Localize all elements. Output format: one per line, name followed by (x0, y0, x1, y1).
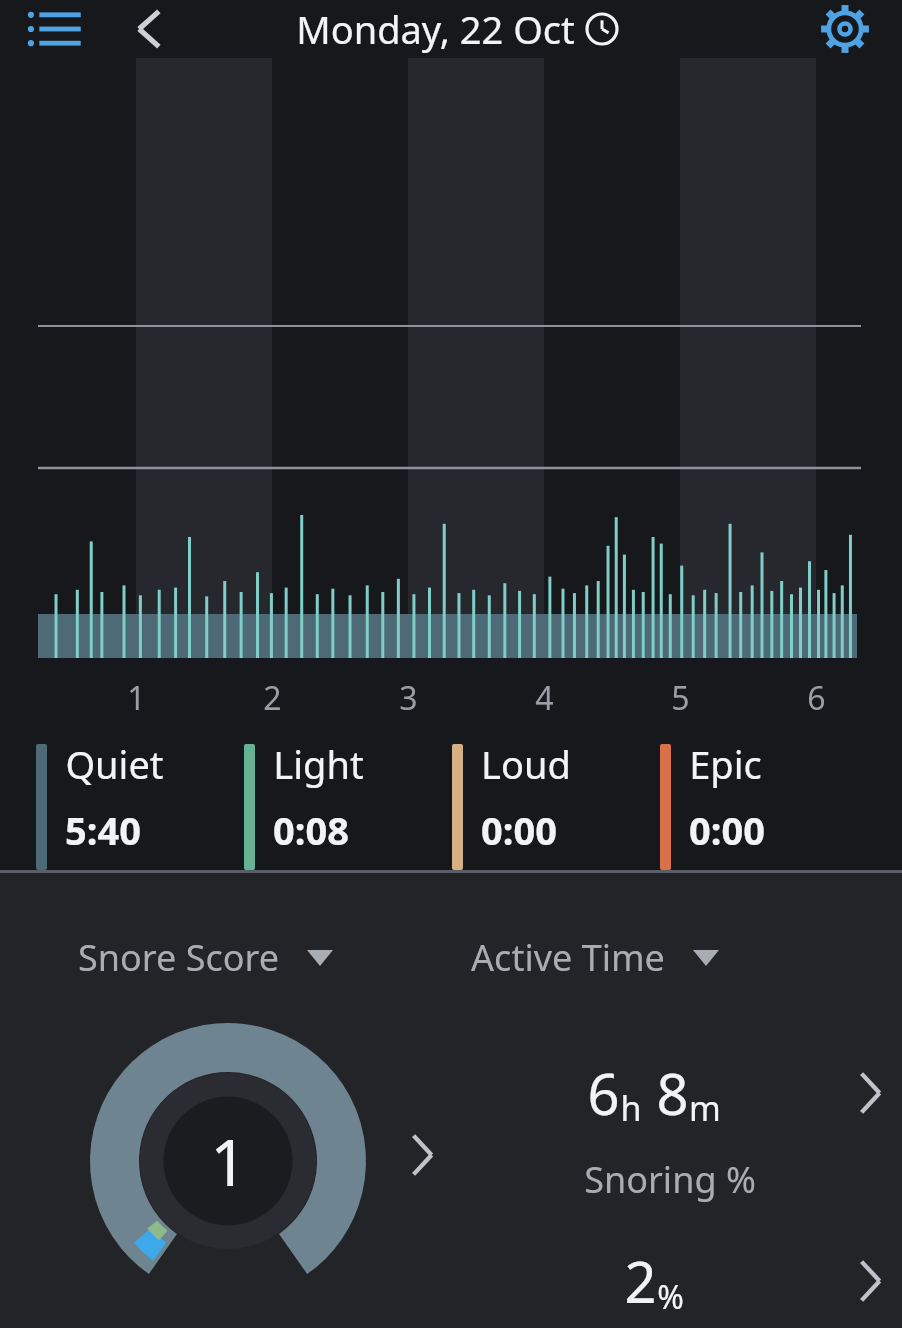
staticText: h (620, 1085, 642, 1131)
staticText: Active Time (471, 933, 665, 982)
staticText: 0:00 (689, 804, 765, 856)
button[interactable]: Snoring % (470, 1155, 870, 1204)
staticText: 1 (127, 676, 146, 720)
button[interactable]: Loud (452, 738, 660, 864)
staticText: Light (273, 738, 364, 790)
staticText: 3 (399, 676, 418, 720)
staticText: Loud (481, 738, 571, 790)
staticText: 2 (624, 1243, 657, 1319)
button[interactable]: Menu (24, 4, 86, 54)
staticText: 6 (587, 1055, 620, 1131)
button[interactable]: Active Time (471, 933, 902, 982)
button[interactable]: Light (244, 738, 452, 864)
staticText: Snoring % (584, 1155, 756, 1204)
staticText: Quiet (65, 738, 164, 790)
button[interactable]: 6 (470, 1045, 902, 1141)
staticText: Epic (689, 738, 762, 790)
button[interactable]: Back (120, 0, 178, 58)
staticText: 8 (656, 1055, 689, 1131)
staticText: 0:08 (273, 804, 349, 856)
button[interactable]: Epic (660, 738, 868, 864)
staticText: m (689, 1085, 721, 1131)
staticText: Snore Score (78, 933, 279, 982)
button[interactable]: Monday, 22 Oct (296, 3, 619, 55)
button[interactable]: Settings (814, 0, 876, 58)
button[interactable]: Snore score details (392, 1125, 452, 1185)
button[interactable]: Quiet (36, 738, 244, 864)
staticText: Monday, 22 Oct (296, 3, 575, 55)
staticText: 6 (807, 676, 826, 720)
staticText: 5 (671, 676, 690, 720)
staticText: 4 (535, 676, 554, 720)
button[interactable]: 2 (470, 1233, 902, 1328)
staticText: % (657, 1275, 684, 1319)
button[interactable]: Snore Score (78, 933, 451, 982)
staticText: 1 (210, 1118, 247, 1205)
button[interactable]: 1 (88, 1021, 368, 1301)
staticText: 2 (263, 676, 282, 720)
staticText: 5:40 (65, 804, 141, 856)
staticText: 0:00 (481, 804, 557, 856)
